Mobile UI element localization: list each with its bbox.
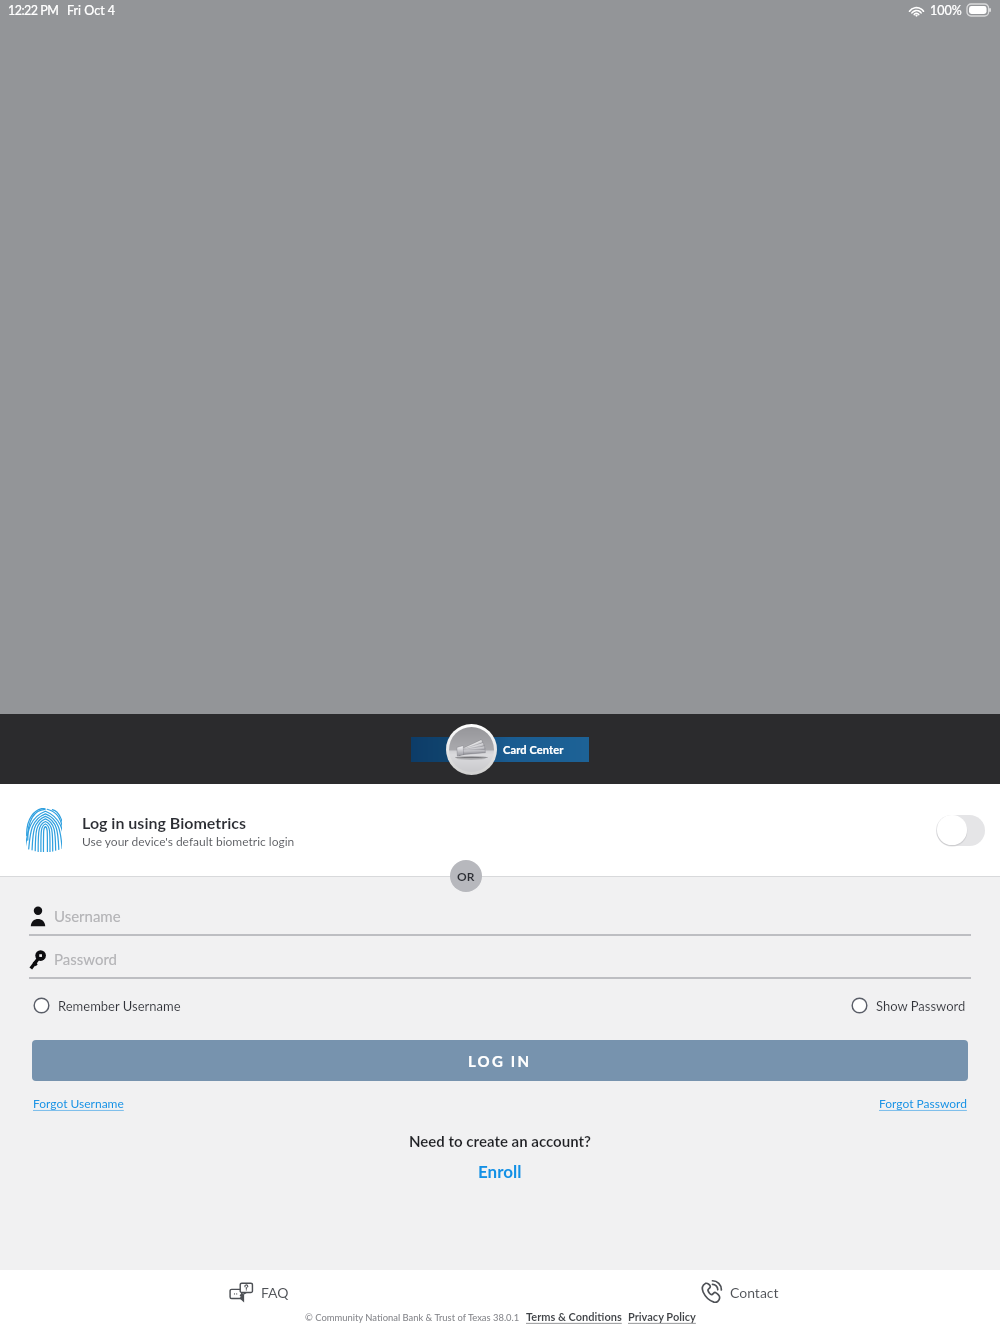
staticText: Show Password bbox=[876, 998, 966, 1014]
staticText: 100% bbox=[930, 3, 962, 18]
button[interactable]: Show Password bbox=[851, 997, 966, 1014]
button[interactable]: Username bbox=[29, 903, 971, 936]
button[interactable]: Terms & Conditions bbox=[526, 1310, 622, 1323]
staticText: Password bbox=[54, 950, 117, 968]
staticText: Log in using Biometrics bbox=[82, 813, 247, 832]
button[interactable]: Password bbox=[29, 946, 971, 979]
staticText: Card Center bbox=[503, 743, 564, 756]
staticText: OR bbox=[457, 869, 475, 883]
button[interactable]: Log in using Biometrics bbox=[26, 784, 985, 876]
button[interactable]: Forgot Password bbox=[879, 1096, 967, 1110]
button[interactable]: Forgot Username bbox=[33, 1096, 124, 1110]
button[interactable]: FAQ bbox=[228, 1279, 289, 1305]
button[interactable]: Enroll bbox=[478, 1161, 522, 1181]
staticText: Use your device's default biometric logi… bbox=[82, 834, 295, 848]
button[interactable]: LOG IN bbox=[32, 1040, 968, 1081]
button[interactable]: Toggle biometric login bbox=[936, 814, 985, 846]
button[interactable]: Remember Username bbox=[33, 997, 181, 1014]
staticText: LOG IN bbox=[468, 1052, 532, 1070]
staticText: Remember Username bbox=[58, 998, 181, 1014]
staticText: Username bbox=[54, 907, 121, 925]
button[interactable]: Privacy Policy bbox=[628, 1310, 696, 1323]
staticText: FAQ bbox=[261, 1284, 289, 1301]
staticText: Contact bbox=[730, 1284, 779, 1301]
staticText: 12:22 PM bbox=[8, 3, 59, 18]
button[interactable]: Contact bbox=[700, 1280, 779, 1304]
staticText: © Community National Bank & Trust of Tex… bbox=[305, 1312, 520, 1323]
staticText: Need to create an account? bbox=[409, 1132, 592, 1150]
staticText: Fri Oct 4 bbox=[67, 3, 116, 18]
